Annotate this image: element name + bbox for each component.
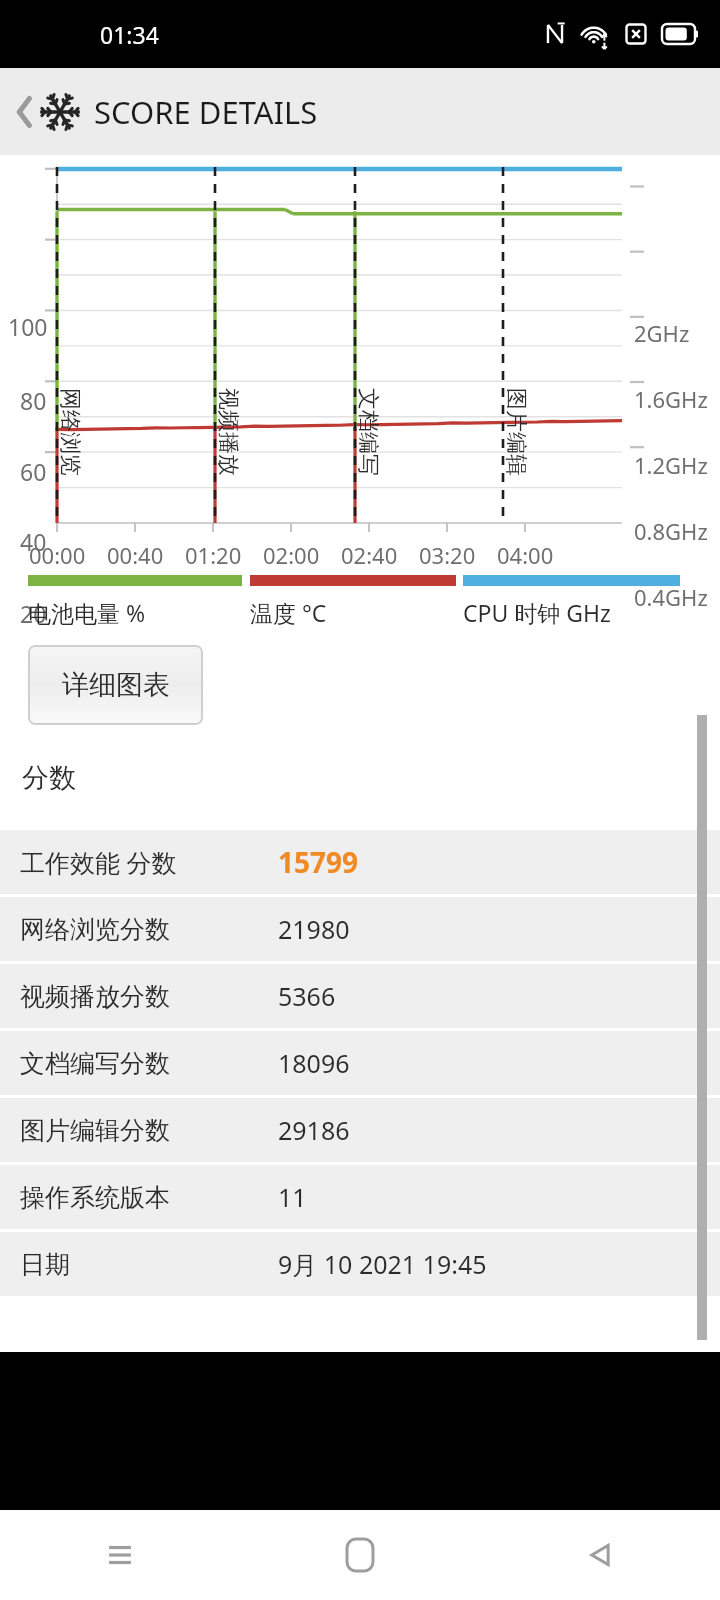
staticText: 60 (20, 456, 47, 487)
staticText: 1.2GHz (634, 450, 708, 480)
staticText: 0.4GHz (634, 582, 708, 612)
staticText: 文档编写分数 (20, 1048, 170, 1079)
staticText: 03:20 (419, 540, 476, 570)
staticText: 00:40 (107, 540, 164, 570)
staticText: 图片编辑分数 (20, 1115, 170, 1146)
staticText: 02:00 (263, 540, 320, 570)
staticText: 网络浏览分数 (20, 914, 170, 945)
button[interactable]: Home (240, 1510, 480, 1600)
staticText: CPU 时钟 GHz (463, 597, 611, 628)
staticText: 80 (20, 385, 47, 416)
staticText: 文档编写 (354, 388, 382, 476)
staticText: 01:34 (100, 19, 159, 50)
button[interactable]: 操作系统版本 (0, 1165, 720, 1229)
button[interactable]: 工作效能 分数 (0, 830, 720, 894)
staticText: 11 (278, 1180, 307, 1214)
button[interactable]: 视频播放分数 (0, 964, 720, 1028)
staticText: 网络浏览 (56, 388, 84, 476)
button[interactable]: 网络浏览分数 (0, 897, 720, 961)
staticText: 5366 (278, 979, 336, 1013)
button[interactable]: 文档编写分数 (0, 1031, 720, 1095)
staticText: 00:00 (29, 540, 86, 570)
staticText: 温度 °C (250, 597, 327, 628)
staticText: 02:40 (341, 540, 398, 570)
staticText: 04:00 (497, 540, 554, 570)
button[interactable]: Back (0, 68, 720, 155)
button[interactable]: 图片编辑分数 (0, 1098, 720, 1162)
staticText: 01:20 (185, 540, 242, 570)
staticText: 日期 (20, 1249, 70, 1280)
other: Back (10, 90, 40, 134)
button[interactable]: Recent apps (0, 1510, 240, 1600)
staticText: 20 (20, 598, 47, 629)
staticText: 18096 (278, 1046, 350, 1080)
button[interactable]: Back (480, 1510, 720, 1600)
staticText: 40 (20, 526, 47, 557)
staticText: 2GHz (634, 318, 690, 348)
staticText: 详细图表 (62, 668, 170, 702)
staticText: 操作系统版本 (20, 1182, 170, 1213)
staticText: 分数 (22, 761, 76, 795)
button[interactable]: 日期 (0, 1232, 720, 1296)
staticText: 工作效能 分数 (20, 845, 177, 879)
staticText: 21980 (278, 912, 350, 946)
staticText: 视频播放 (214, 388, 242, 476)
staticText: 0.8GHz (634, 516, 708, 546)
staticText: 电池电量 % (28, 597, 146, 628)
staticText: 1.6GHz (634, 384, 708, 414)
staticText: 图片编辑 (502, 388, 530, 476)
staticText: SCORE DETAILS (94, 91, 318, 133)
button[interactable]: 详细图表 (28, 645, 203, 725)
staticText: 29186 (278, 1113, 350, 1147)
staticText: 15799 (278, 843, 359, 881)
staticText: 100 (8, 311, 48, 342)
staticText: 9月 10 2021 19:45 (278, 1247, 487, 1281)
staticText: 视频播放分数 (20, 981, 170, 1012)
